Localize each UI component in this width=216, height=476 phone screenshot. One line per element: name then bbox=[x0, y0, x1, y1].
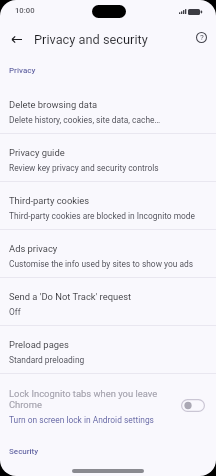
staticText: Standard preloading bbox=[9, 355, 85, 365]
staticText: 10:00 bbox=[15, 6, 35, 15]
staticText: Send a 'Do Not Track' request bbox=[9, 291, 132, 302]
staticText: Delete history, cookies, site data, cach… bbox=[9, 115, 161, 125]
staticText: Review key privacy and security controls bbox=[9, 163, 159, 173]
staticText: Privacy bbox=[9, 66, 36, 75]
button[interactable]: Preload pages bbox=[0, 326, 216, 374]
staticText: Third-party cookies are blocked in Incog… bbox=[9, 211, 196, 221]
button[interactable]: Delete browsing data bbox=[0, 86, 216, 134]
button[interactable]: Third-party cookies bbox=[0, 182, 216, 230]
button[interactable]: Lock Incognito tabs when you leave Chrom… bbox=[0, 374, 216, 432]
staticText: Preload pages bbox=[9, 339, 69, 350]
staticText: Delete browsing data bbox=[9, 99, 98, 110]
button[interactable]: Ads privacy bbox=[0, 230, 216, 278]
staticText: Lock Incognito tabs when you leave Chrom… bbox=[9, 388, 169, 410]
button[interactable]: Send a 'Do Not Track' request bbox=[0, 278, 216, 326]
staticText: ? bbox=[200, 33, 204, 42]
staticText: Privacy guide bbox=[9, 147, 65, 158]
staticText: Third-party cookies bbox=[9, 195, 90, 206]
staticText: Privacy and security bbox=[34, 32, 148, 47]
staticText: Off bbox=[9, 307, 21, 317]
button[interactable]: Help bbox=[188, 24, 215, 51]
button[interactable]: Back bbox=[3, 25, 31, 53]
staticText: Customise the info used by sites to show… bbox=[9, 259, 194, 269]
button[interactable]: Privacy guide bbox=[0, 134, 216, 182]
staticText: Security bbox=[9, 447, 39, 456]
staticText: Turn on screen lock in Android settings bbox=[9, 415, 154, 425]
staticText: Ads privacy bbox=[9, 243, 58, 254]
